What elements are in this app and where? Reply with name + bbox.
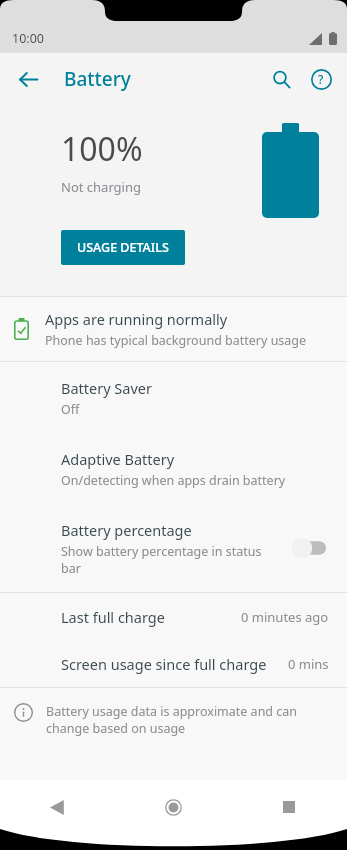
button[interactable]: Battery percentage toggle: [289, 533, 333, 563]
button[interactable]: Battery percentage: [0, 504, 347, 592]
button[interactable]: Back: [0, 780, 115, 834]
staticText: Not charging: [61, 178, 142, 196]
button[interactable]: Home: [115, 780, 231, 834]
staticText: Off: [61, 401, 80, 418]
staticText: ?: [318, 71, 324, 87]
staticText: Battery: [64, 66, 131, 92]
staticText: Battery usage data is approximate and ca…: [46, 703, 325, 737]
button[interactable]: Search: [261, 59, 301, 99]
staticText: 10:00: [12, 30, 44, 47]
staticText: Phone has typical background battery usa…: [45, 332, 307, 349]
button[interactable]: USAGE DETAILS: [61, 230, 185, 265]
button[interactable]: Screen usage since full charge: [0, 640, 347, 687]
button[interactable]: Help: [301, 59, 341, 99]
staticText: On/detecting when apps drain battery: [61, 472, 286, 489]
staticText: Adaptive Battery: [61, 449, 175, 469]
staticText: Last full charge: [61, 607, 165, 627]
button[interactable]: Last full charge: [0, 593, 347, 640]
staticText: Screen usage since full charge: [61, 654, 267, 674]
staticText: 0 minutes ago: [241, 608, 329, 626]
staticText: 0 mins: [288, 655, 329, 673]
staticText: USAGE DETAILS: [77, 239, 169, 256]
button[interactable]: Apps are running normally: [0, 297, 347, 361]
staticText: Battery Saver: [61, 378, 152, 398]
button[interactable]: Back: [8, 59, 48, 99]
staticText: 100%: [61, 127, 143, 171]
staticText: Apps are running normally: [45, 309, 228, 329]
button[interactable]: Battery Saver: [0, 362, 347, 433]
staticText: Battery percentage: [61, 520, 192, 540]
button[interactable]: Adaptive Battery: [0, 433, 347, 504]
button[interactable]: Recent apps: [231, 780, 347, 834]
staticText: Show battery percentage in status bar: [61, 543, 266, 576]
